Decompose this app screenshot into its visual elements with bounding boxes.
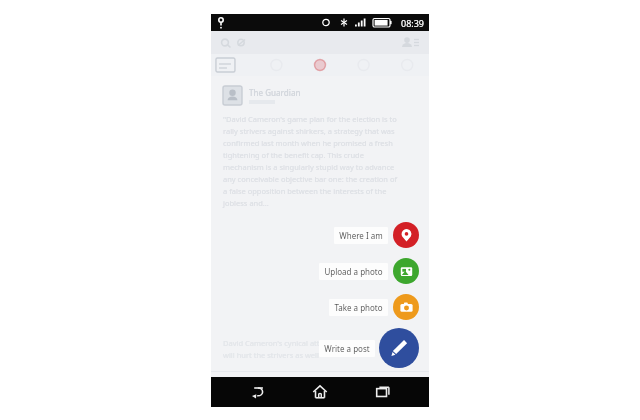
staticText: David Cameron's cynical attack on 'skive… xyxy=(223,338,372,348)
button[interactable]: Where I am xyxy=(334,222,419,248)
staticText: will hurt the strivers as well xyxy=(223,350,319,360)
button[interactable]: Recent apps xyxy=(366,377,400,407)
button[interactable]: Write a post xyxy=(379,328,419,368)
staticText: "David Cameron's game plan for the elect… xyxy=(223,114,397,124)
button[interactable]: Upload a photo xyxy=(319,258,419,284)
staticText: rally strivers against shirkers, a strat… xyxy=(223,126,395,136)
staticText: tightening of the benefit cap. This crud… xyxy=(223,150,364,160)
button[interactable]: Where I am xyxy=(334,227,388,244)
button[interactable]: Home xyxy=(303,377,337,407)
staticText: any conceivable objective bar one: the c… xyxy=(223,174,398,184)
staticText: 08:39 xyxy=(401,17,425,29)
staticText: jobless and... xyxy=(223,198,269,208)
button[interactable]: Upload a photo xyxy=(393,258,419,284)
button[interactable]: Take a photo xyxy=(329,294,419,320)
staticText: confirmed last month when he promised a … xyxy=(223,138,393,148)
staticText: mechanism is a singularly stupid way to … xyxy=(223,162,395,172)
button[interactable]: Take a photo xyxy=(329,299,388,316)
button[interactable]: Take a photo xyxy=(393,294,419,320)
staticText: Take a photo xyxy=(334,302,383,313)
staticText: Where I am xyxy=(339,230,383,241)
staticText: The Guardian xyxy=(249,87,301,98)
staticText: Write a post xyxy=(324,343,370,354)
button[interactable]: Upload a photo xyxy=(319,263,388,280)
staticText: a false opposition between the interests… xyxy=(223,186,387,196)
button[interactable]: Back xyxy=(240,377,274,407)
button[interactable]: Write a post xyxy=(319,340,375,357)
button[interactable]: Where I am xyxy=(393,222,419,248)
staticText: Upload a photo xyxy=(324,266,383,277)
